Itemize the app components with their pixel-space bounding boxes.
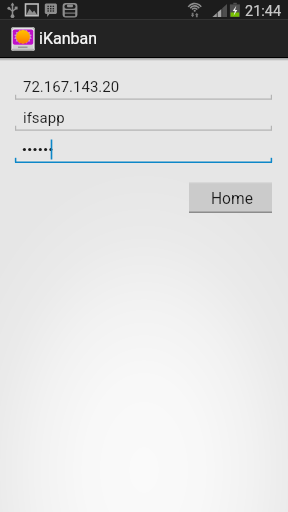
staticText: ifsapp <box>23 109 65 127</box>
button[interactable]: Home <box>189 182 272 213</box>
staticText: iKanban <box>39 29 97 48</box>
staticText: 21:44 <box>245 3 282 20</box>
button[interactable]: iKanban home <box>0 20 288 57</box>
staticText: Home <box>211 190 253 208</box>
staticText: 72.167.143.20 <box>23 78 120 96</box>
